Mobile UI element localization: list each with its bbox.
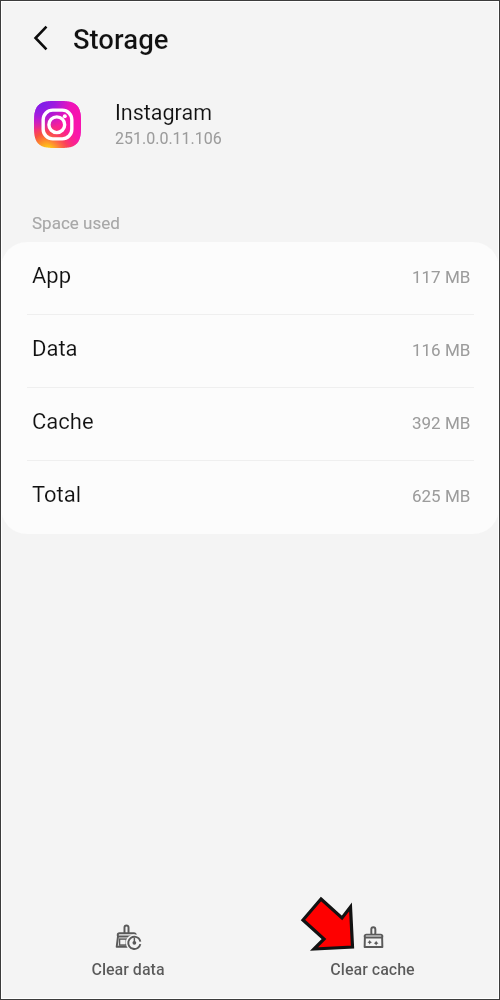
- staticText: Total: [32, 482, 82, 508]
- staticText: Clear cache: [330, 960, 415, 979]
- staticText: 625 MB: [412, 486, 471, 506]
- button[interactable]: Total: [1, 461, 499, 534]
- staticText: Clear data: [91, 960, 165, 979]
- staticText: 392 MB: [412, 413, 471, 433]
- button[interactable]: App: [1, 242, 499, 315]
- staticText: App: [32, 263, 72, 289]
- button[interactable]: Navigate up: [0, 6, 74, 70]
- staticText: Space used: [32, 213, 120, 233]
- staticText: Storage: [73, 23, 169, 55]
- button[interactable]: Data: [1, 315, 499, 388]
- button[interactable]: Clear cache: [306, 896, 439, 993]
- staticText: 117 MB: [412, 267, 471, 287]
- staticText: 251.0.0.11.106: [115, 129, 222, 148]
- staticText: Instagram: [115, 100, 213, 125]
- staticText: 116 MB: [412, 340, 471, 360]
- button[interactable]: Cache: [1, 388, 499, 461]
- staticText: Data: [32, 336, 78, 362]
- staticText: Cache: [32, 409, 94, 435]
- button[interactable]: Clear data: [67, 896, 189, 993]
